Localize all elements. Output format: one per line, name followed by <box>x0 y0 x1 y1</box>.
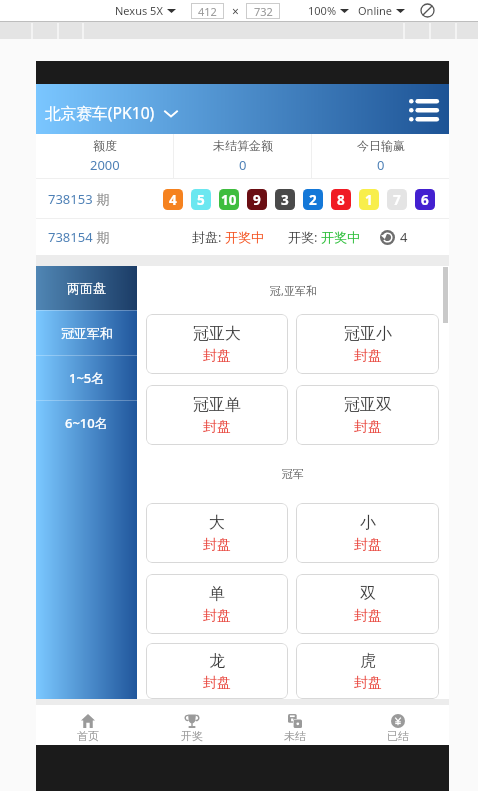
staticText: 6~10名 <box>65 414 108 432</box>
staticText: 732 <box>254 4 273 19</box>
staticText: 首页 <box>77 729 99 743</box>
staticText: 冠亚双 <box>344 395 392 415</box>
staticText: 期 <box>93 228 110 246</box>
staticText: 虎 <box>360 651 376 671</box>
staticText: 大 <box>209 513 225 533</box>
staticText: 期 <box>93 190 110 208</box>
staticText: 龙 <box>209 651 225 671</box>
button[interactable]: 冠亚军和 <box>36 310 137 355</box>
staticText: 冠亚单 <box>193 395 241 415</box>
staticText: 封盘 <box>354 536 382 554</box>
staticText: 3 <box>281 191 289 209</box>
staticText: Nexus 5X <box>115 3 163 18</box>
staticText: 开奖 <box>181 729 203 743</box>
staticText: 开奖中 <box>225 229 264 245</box>
button[interactable]: 虎 <box>296 643 439 699</box>
staticText: 小 <box>360 513 376 533</box>
staticText: 未结算金额 <box>213 138 273 153</box>
button[interactable]: 开奖 <box>140 705 243 745</box>
staticText: 5 <box>197 191 205 209</box>
staticText: 738154 <box>48 228 93 246</box>
staticText: 412 <box>198 4 217 19</box>
staticText: 冠军 <box>282 467 304 481</box>
staticText: 未结 <box>284 729 306 743</box>
staticText: 已结 <box>387 729 409 743</box>
staticText: 冠亚军和 <box>61 325 113 341</box>
staticText: 100% <box>308 3 337 18</box>
staticText: 冠,亚军和 <box>270 283 317 298</box>
button[interactable]: 已结 <box>346 705 449 745</box>
button[interactable]: 冠亚单 <box>146 385 288 445</box>
button[interactable]: 今日输赢 <box>312 134 449 178</box>
staticText: 8 <box>337 191 345 209</box>
staticText: 北京赛车(PK10) <box>45 102 155 123</box>
staticText: 封盘 <box>203 536 231 554</box>
staticText: 双 <box>360 584 376 604</box>
staticText: 1~5名 <box>69 369 105 387</box>
staticText: 封盘 <box>354 347 382 365</box>
button[interactable]: 冠亚双 <box>296 385 439 445</box>
button[interactable]: Refresh <box>380 230 395 245</box>
staticText: 4 <box>400 228 408 246</box>
staticText: 0 <box>239 156 247 174</box>
staticText: 封盘 <box>354 674 382 692</box>
button[interactable]: 1~5名 <box>36 355 137 400</box>
button[interactable]: 未结 <box>243 705 346 745</box>
button[interactable]: 冠亚大 <box>146 314 288 374</box>
button[interactable]: 龙 <box>146 643 288 699</box>
button[interactable]: 双 <box>296 574 439 634</box>
staticText: 开奖: <box>288 228 321 246</box>
staticText: 7 <box>393 191 401 209</box>
staticText: 封盘 <box>354 418 382 436</box>
staticText: 10 <box>221 191 237 209</box>
staticText: 4 <box>169 191 177 209</box>
staticText: 今日输赢 <box>357 138 405 153</box>
button[interactable]: 大 <box>146 503 288 563</box>
button[interactable]: 首页 <box>36 705 140 745</box>
staticText: 封盘: <box>192 228 225 246</box>
staticText: 额度 <box>93 138 117 153</box>
staticText: 2 <box>309 191 317 209</box>
staticText: 0 <box>377 156 385 174</box>
staticText: 封盘 <box>203 347 231 365</box>
button[interactable]: 额度 <box>36 134 173 178</box>
staticText: 2000 <box>90 156 120 174</box>
staticText: 开奖中 <box>321 229 360 245</box>
staticText: 单 <box>209 584 225 604</box>
button[interactable]: 6~10名 <box>36 400 137 445</box>
staticText: 738153 <box>48 190 93 208</box>
button[interactable]: 两面盘 <box>36 266 137 310</box>
button[interactable]: 冠亚小 <box>296 314 439 374</box>
staticText: × <box>232 3 239 19</box>
staticText: 封盘 <box>203 674 231 692</box>
staticText: 冠亚小 <box>344 324 392 344</box>
staticText: 6 <box>421 191 429 209</box>
staticText: 封盘 <box>354 607 382 625</box>
staticText: 1 <box>365 191 373 209</box>
button[interactable]: 小 <box>296 503 439 563</box>
button[interactable]: 未结算金额 <box>174 134 311 178</box>
staticText: Online <box>358 3 393 18</box>
staticText: 冠亚大 <box>193 324 241 344</box>
staticText: 封盘 <box>203 418 231 436</box>
staticText: 两面盘 <box>67 280 106 296</box>
staticText: 封盘 <box>203 607 231 625</box>
button[interactable]: Menu <box>405 91 441 127</box>
staticText: 9 <box>253 191 261 209</box>
button[interactable]: 单 <box>146 574 288 634</box>
button[interactable]: 北京赛车(PK10) <box>45 93 179 126</box>
